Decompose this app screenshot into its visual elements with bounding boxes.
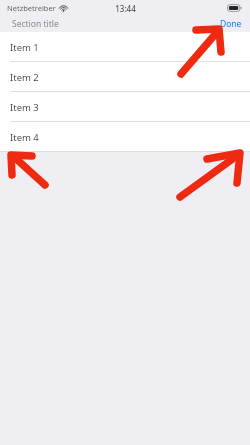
button[interactable]: Done xyxy=(212,16,250,32)
staticText: Section title xyxy=(12,18,59,30)
staticText: Item 4 xyxy=(10,131,39,144)
button[interactable]: Item 2 xyxy=(0,62,250,92)
staticText: Netzbetreiber xyxy=(7,3,56,13)
button[interactable]: Item 1 xyxy=(0,32,250,62)
staticText: 13:44 xyxy=(115,3,136,14)
button[interactable]: Item 4 xyxy=(0,122,250,152)
staticText: Item 1 xyxy=(10,41,39,54)
staticText: Item 3 xyxy=(10,101,39,114)
button[interactable]: Item 3 xyxy=(0,92,250,122)
staticText: Done xyxy=(220,18,242,30)
staticText: Item 2 xyxy=(10,71,39,84)
